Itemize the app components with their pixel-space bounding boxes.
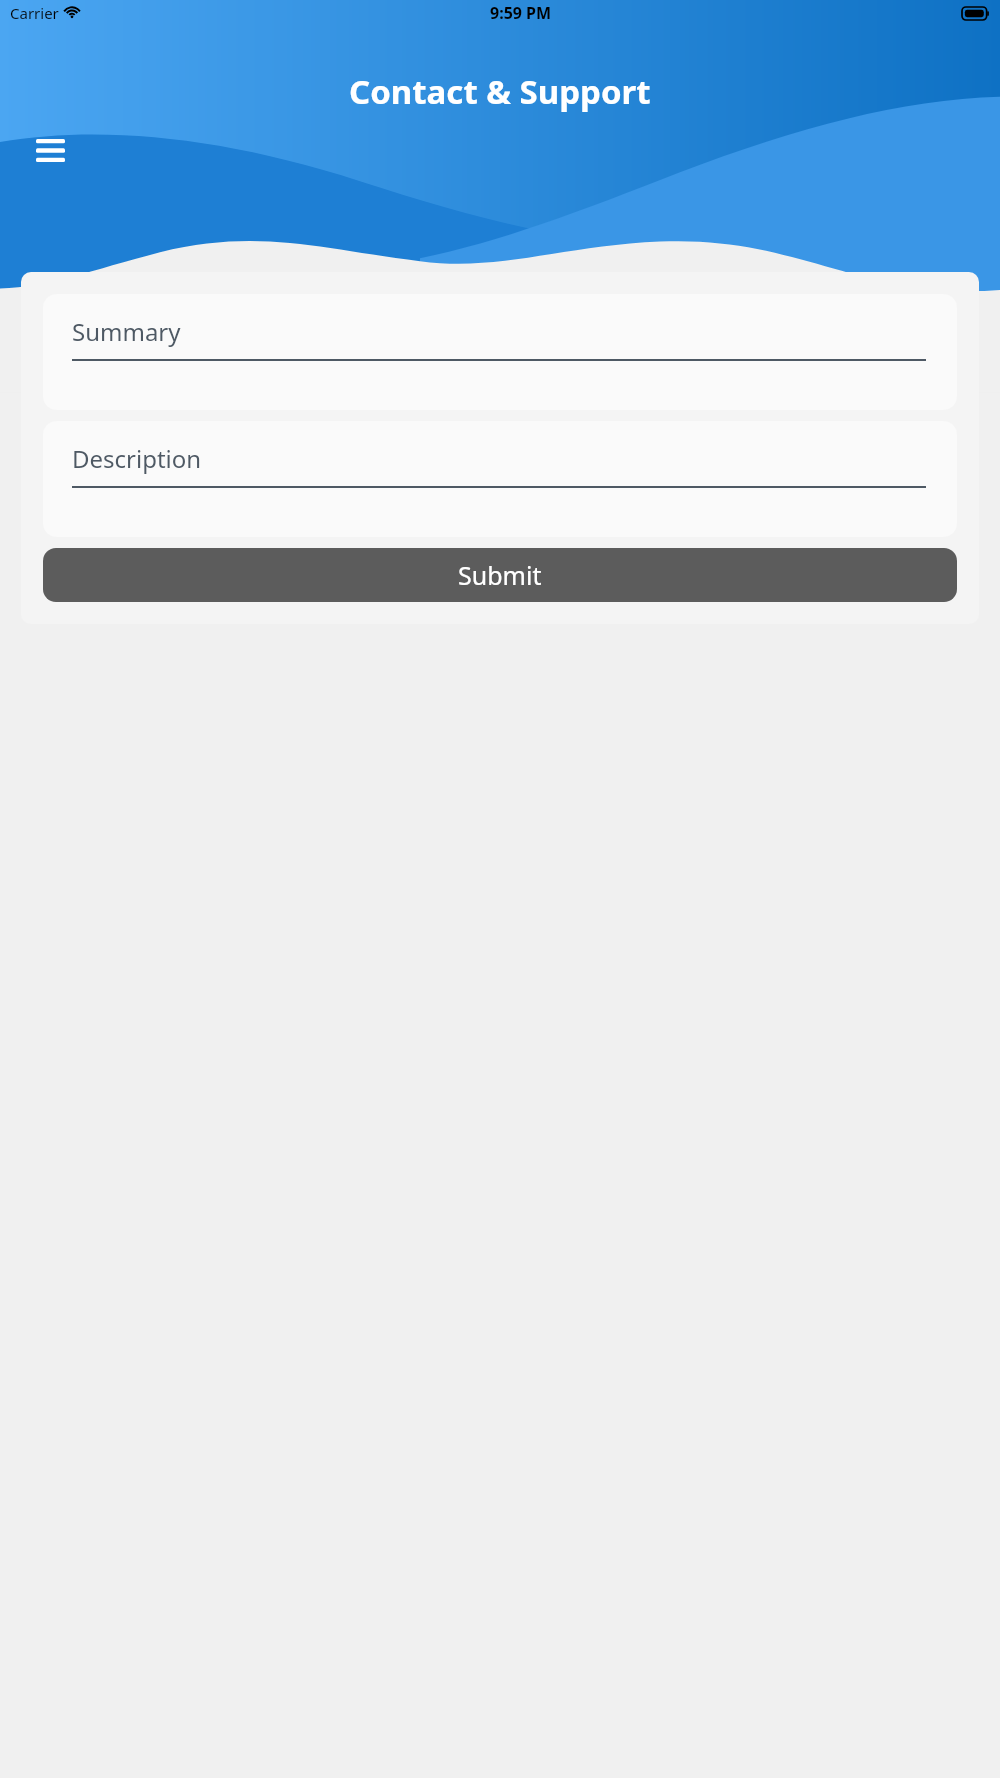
staticText: Contact & Support <box>349 69 651 114</box>
staticText: Submit <box>458 558 542 592</box>
button[interactable]: Submit <box>43 548 957 602</box>
staticText: 9:59 PM <box>490 2 552 24</box>
staticText: Description <box>72 442 202 475</box>
button[interactable]: Open navigation menu <box>26 126 74 174</box>
staticText: Summary <box>72 315 181 348</box>
button[interactable]: Description <box>43 421 957 537</box>
button[interactable]: Summary <box>43 294 957 410</box>
staticText: Carrier <box>10 3 59 23</box>
